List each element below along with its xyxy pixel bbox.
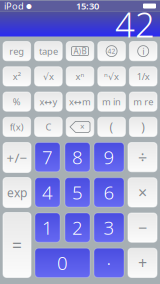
button[interactable]: 1	[35, 213, 60, 242]
staticText: ·	[106, 250, 111, 275]
staticText: 42	[108, 47, 116, 56]
staticText: ×	[80, 122, 85, 132]
staticText: =	[12, 233, 22, 256]
staticText: )	[141, 119, 145, 135]
staticText: 5	[72, 180, 83, 205]
button[interactable]: 1/x	[129, 67, 157, 86]
button[interactable]: 6	[94, 178, 124, 207]
staticText: ÷	[138, 146, 147, 168]
staticText: iPod	[4, 0, 24, 12]
staticText: 3	[103, 215, 114, 240]
staticText: xⁿ	[75, 70, 84, 83]
staticText: +	[138, 252, 147, 273]
button[interactable]: +/−	[3, 142, 31, 172]
staticText: +/−	[6, 149, 27, 166]
staticText: m re	[133, 95, 153, 108]
staticText: 42	[115, 1, 155, 47]
button[interactable]: Constants	[98, 41, 125, 61]
staticText: f(x)	[10, 121, 24, 133]
button[interactable]: tape	[35, 41, 62, 61]
button[interactable]: ⁿ√x	[98, 67, 125, 86]
button[interactable]: 2	[65, 213, 90, 242]
button[interactable]: x↔y	[35, 92, 62, 111]
button[interactable]: %	[3, 92, 31, 111]
button[interactable]: 8	[65, 142, 90, 172]
staticText: 0	[57, 250, 68, 275]
button[interactable]: 0	[35, 248, 90, 277]
button[interactable]: m re	[129, 92, 157, 111]
button[interactable]: ÷	[128, 142, 157, 172]
staticText: ⁿ√x	[104, 70, 119, 83]
staticText: 6	[103, 180, 114, 205]
staticText: reg	[9, 45, 24, 57]
button[interactable]: x↔m	[66, 92, 94, 111]
staticText: x↔m	[69, 95, 91, 108]
button[interactable]: 4	[35, 178, 60, 207]
button[interactable]: 7	[35, 142, 60, 172]
button[interactable]: m in	[98, 92, 125, 111]
staticText: exp	[7, 184, 27, 200]
staticText: A⟩B	[73, 46, 86, 56]
staticText: x²	[13, 70, 21, 83]
button[interactable]: exp	[3, 177, 31, 207]
staticText: 4	[42, 180, 53, 205]
button[interactable]: x²	[3, 67, 31, 86]
button[interactable]: A⟩B	[66, 41, 94, 61]
staticText: ×	[138, 182, 147, 203]
staticText: m in	[102, 95, 121, 108]
button[interactable]: C	[35, 117, 62, 136]
button[interactable]: −	[128, 213, 157, 242]
button[interactable]: √x	[35, 67, 62, 86]
button[interactable]: 9	[94, 142, 124, 172]
staticText: ●	[24, 2, 32, 10]
button[interactable]: reg	[3, 41, 31, 61]
staticText: i	[142, 45, 144, 57]
staticText: C	[45, 121, 51, 133]
button[interactable]: 5	[65, 178, 90, 207]
staticText: 15:30	[76, 0, 99, 12]
button[interactable]: (	[98, 117, 125, 136]
button[interactable]: +	[128, 248, 157, 277]
button[interactable]: 3	[94, 213, 124, 242]
staticText: (	[110, 119, 114, 135]
staticText: x↔y	[39, 95, 57, 108]
button[interactable]: )	[129, 117, 157, 136]
button[interactable]: Info	[129, 41, 157, 61]
staticText: 8	[72, 145, 83, 169]
staticText: %	[13, 95, 21, 108]
staticText: −	[138, 217, 147, 238]
staticText: 7	[42, 145, 53, 169]
button[interactable]: ·	[94, 248, 124, 277]
staticText: 1	[42, 215, 53, 240]
staticText: √x	[43, 70, 54, 83]
button[interactable]: f(x)	[3, 117, 31, 136]
button[interactable]: Delete	[66, 117, 94, 136]
staticText: 2	[72, 215, 83, 240]
staticText: 9	[103, 145, 114, 169]
button[interactable]: =	[3, 212, 31, 277]
button[interactable]: xⁿ	[66, 67, 94, 86]
staticText: 1/x	[137, 70, 150, 83]
button[interactable]: ×	[128, 178, 157, 207]
staticText: tape	[39, 45, 58, 57]
